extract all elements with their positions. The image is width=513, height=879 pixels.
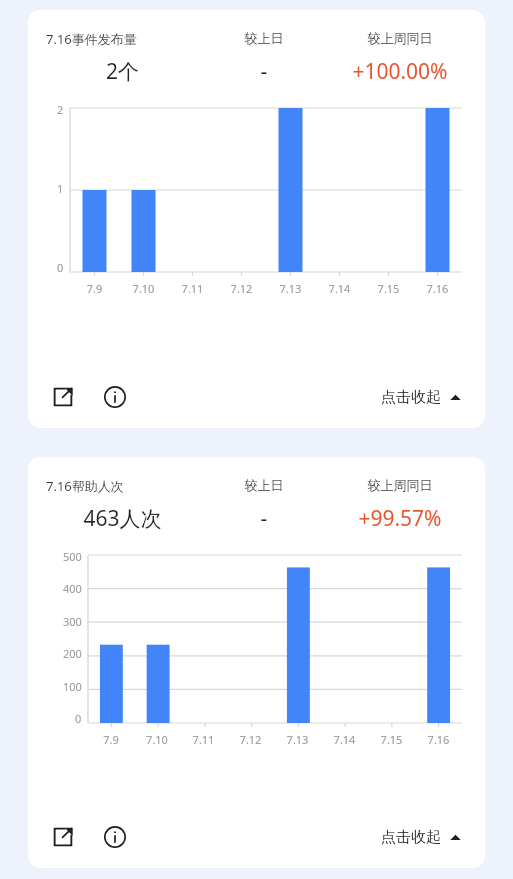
- staticText: 2: [57, 102, 64, 114]
- staticText: 7.16事件发布量: [46, 30, 199, 48]
- staticText: 较上日: [199, 30, 329, 46]
- staticText: 400: [63, 581, 82, 593]
- staticText: 7.14: [315, 281, 364, 296]
- staticText: 7.14: [321, 732, 368, 747]
- staticText: 7.15: [368, 732, 415, 747]
- staticText: 300: [63, 614, 82, 626]
- staticText: -: [199, 57, 329, 86]
- staticText: 较上周同日: [329, 30, 471, 46]
- button[interactable]: 7.16帮助人次: [28, 457, 485, 868]
- staticText: +99.57%: [329, 504, 471, 533]
- staticText: 1: [57, 181, 64, 193]
- staticText: 较上周同日: [329, 477, 471, 493]
- staticText: 0: [57, 260, 64, 272]
- staticText: 2个: [46, 57, 199, 86]
- staticText: 7.11: [168, 281, 217, 296]
- staticText: 较上日: [199, 477, 329, 493]
- button[interactable]: 7.16事件发布量: [28, 10, 485, 428]
- button[interactable]: 打开: [46, 820, 80, 854]
- staticText: 点击收起: [381, 388, 441, 407]
- staticText: 500: [63, 549, 82, 561]
- staticText: 7.15: [364, 281, 413, 296]
- button[interactable]: 点击收起: [377, 824, 465, 851]
- button[interactable]: 说明: [98, 380, 132, 414]
- staticText: 7.11: [180, 732, 227, 747]
- staticText: 0: [75, 711, 82, 723]
- staticText: 100: [63, 679, 82, 691]
- button[interactable]: 说明: [98, 820, 132, 854]
- staticText: 7.9: [70, 281, 119, 296]
- staticText: 7.9: [88, 732, 134, 747]
- staticText: 463人次: [46, 504, 199, 533]
- staticText: 7.16帮助人次: [46, 477, 199, 495]
- staticText: 7.16: [415, 732, 462, 747]
- staticText: 7.10: [119, 281, 168, 296]
- staticText: 点击收起: [381, 828, 441, 847]
- staticText: 7.12: [217, 281, 266, 296]
- staticText: 200: [63, 646, 82, 658]
- staticText: -: [199, 504, 329, 533]
- staticText: 7.10: [134, 732, 180, 747]
- staticText: +100.00%: [329, 57, 471, 86]
- staticText: 7.13: [266, 281, 315, 296]
- button[interactable]: 打开: [46, 380, 80, 414]
- button[interactable]: 点击收起: [377, 384, 465, 411]
- staticText: 7.13: [274, 732, 321, 747]
- staticText: 7.16: [413, 281, 462, 296]
- staticText: 7.12: [227, 732, 274, 747]
